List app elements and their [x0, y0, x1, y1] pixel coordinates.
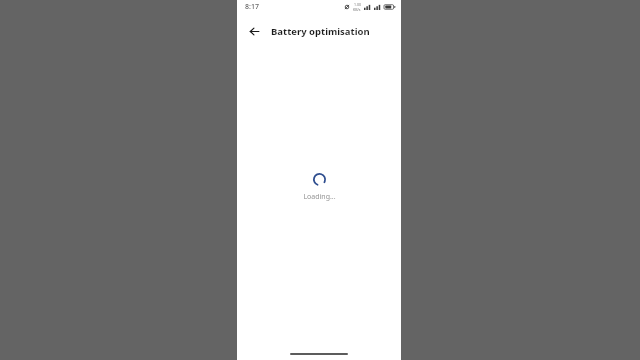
- button[interactable]: Back: [243, 20, 265, 42]
- staticText: KB/s: [353, 7, 361, 12]
- staticText: Loading...: [303, 192, 336, 202]
- staticText: 8:17: [245, 2, 259, 12]
- staticText: 1.00: [354, 2, 361, 7]
- staticText: Battery optimisation: [271, 25, 370, 38]
